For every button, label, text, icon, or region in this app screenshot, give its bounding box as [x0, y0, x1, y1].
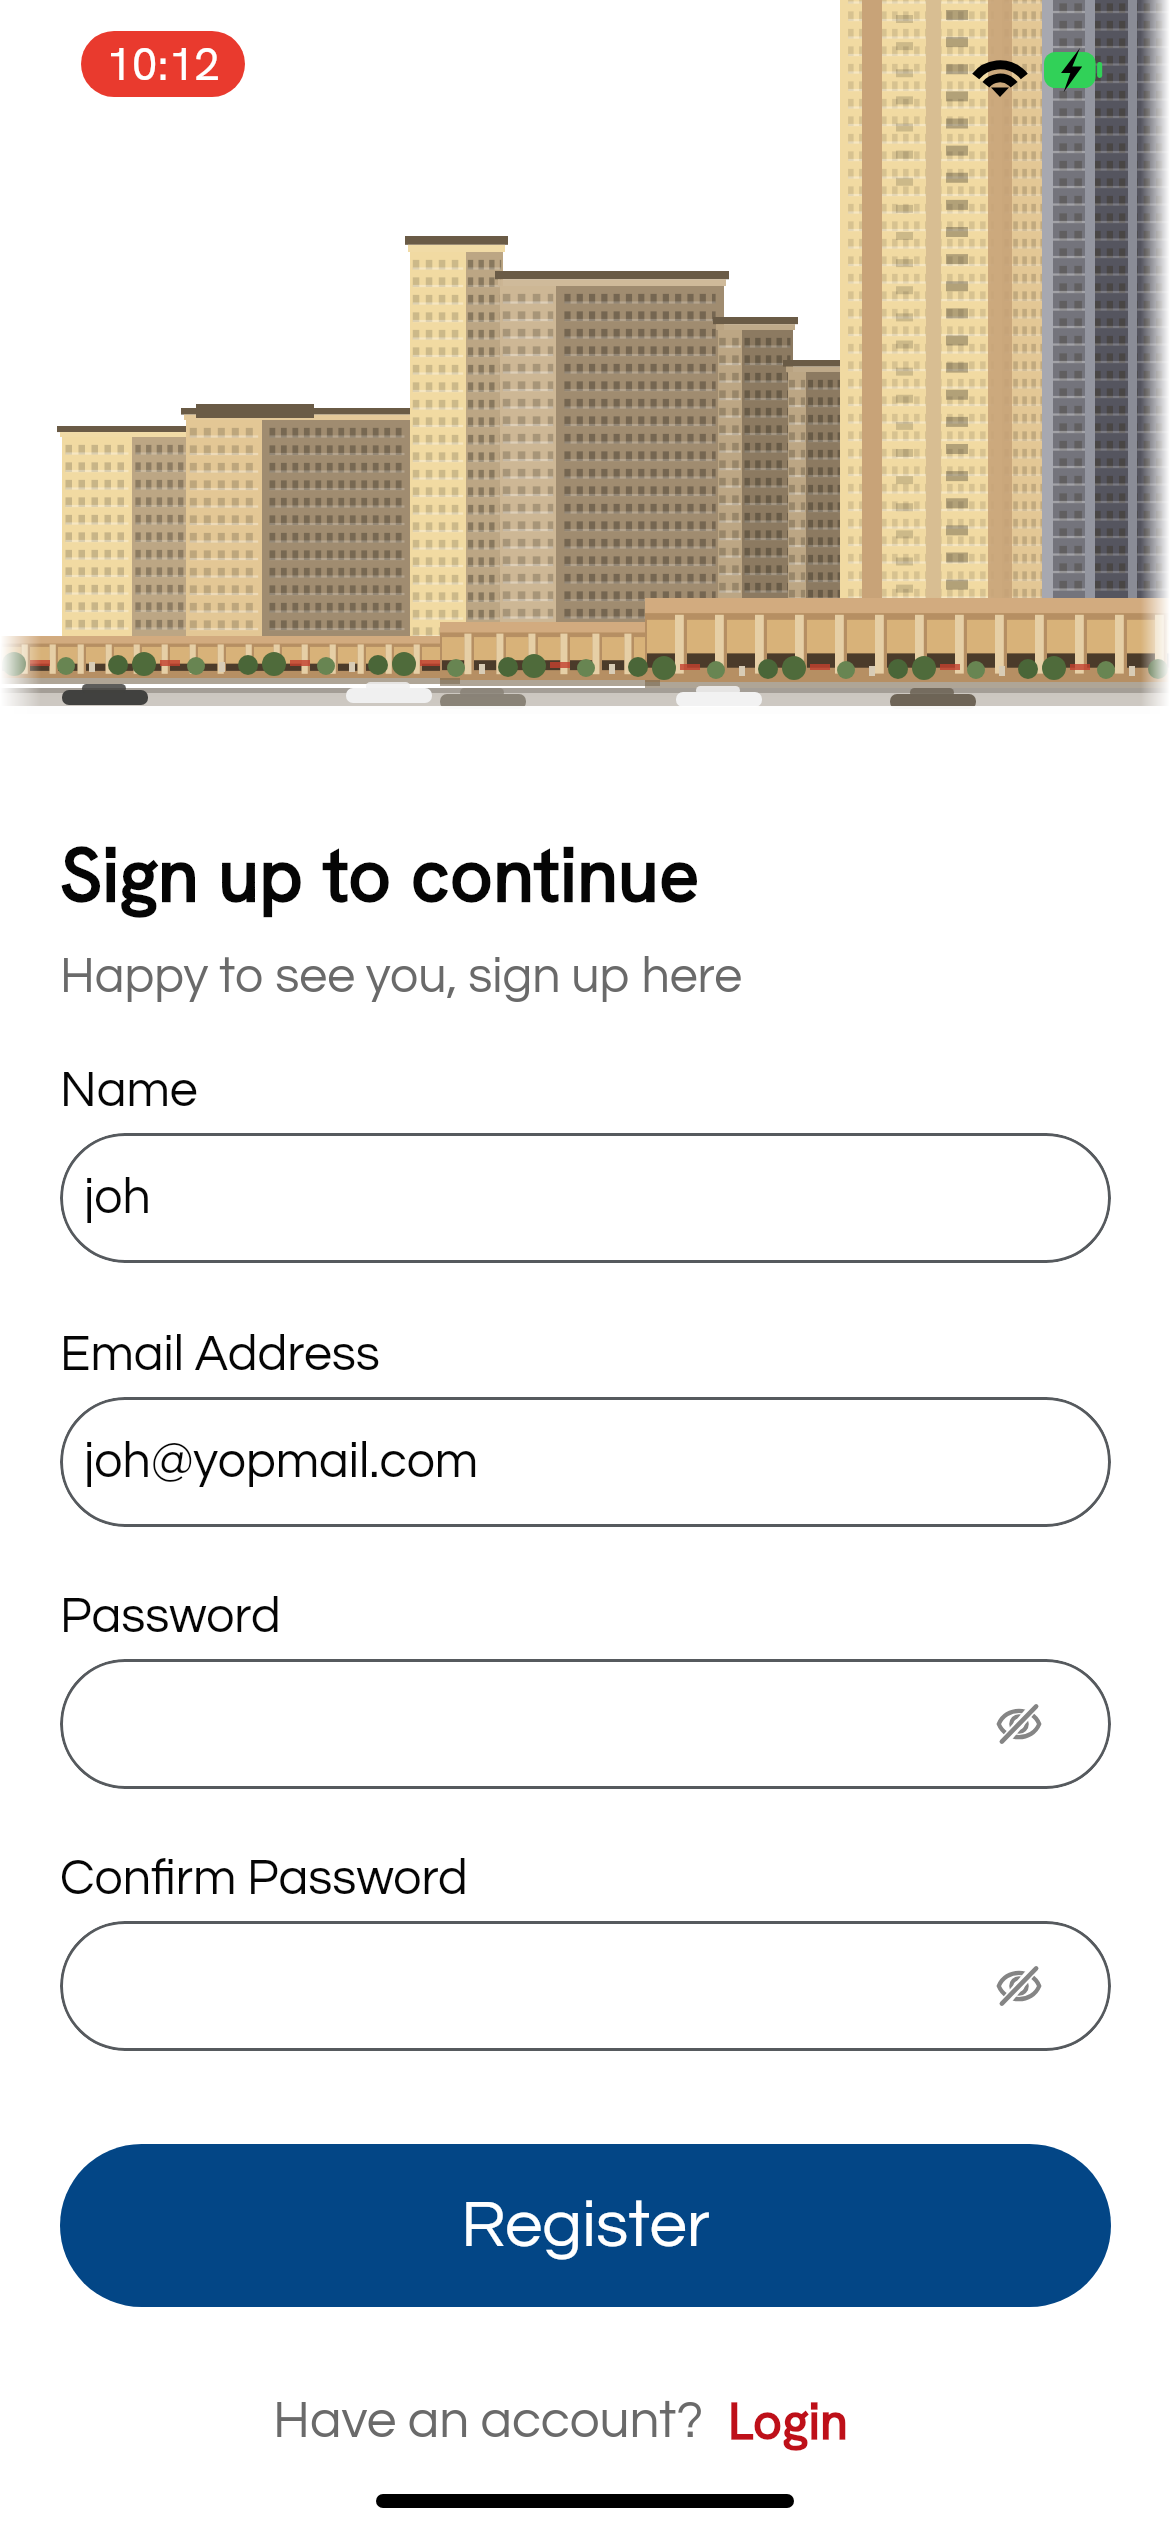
staticText: Login — [728, 2388, 848, 2454]
other: Battery charging — [1044, 52, 1104, 88]
button[interactable]: Show password — [60, 1659, 1111, 1789]
button[interactable]: joh@yopmail.com — [60, 1397, 1111, 1527]
staticText: Password — [60, 1591, 281, 1643]
staticText: Register — [461, 2191, 710, 2260]
button[interactable]: Register — [60, 2144, 1111, 2307]
staticText: Confirm Password — [60, 1853, 468, 1905]
staticText: joh — [84, 1172, 151, 1224]
other: Wi-Fi — [970, 48, 1030, 92]
button[interactable]: joh — [60, 1133, 1111, 1263]
button[interactable]: Show password — [60, 1921, 1111, 2051]
staticText: joh@yopmail.com — [84, 1436, 479, 1488]
staticText: 10:12 — [106, 34, 221, 94]
button[interactable]: Show password — [997, 1964, 1041, 2008]
button[interactable]: Login — [728, 2388, 848, 2454]
staticText: Email Address — [60, 1329, 380, 1381]
staticText: Sign up to continue — [60, 826, 700, 924]
staticText: Happy to see you, sign up here — [60, 951, 743, 1003]
staticText: Have an account? — [273, 2394, 704, 2449]
staticText: Name — [60, 1065, 198, 1117]
button[interactable]: Show password — [997, 1702, 1041, 1746]
